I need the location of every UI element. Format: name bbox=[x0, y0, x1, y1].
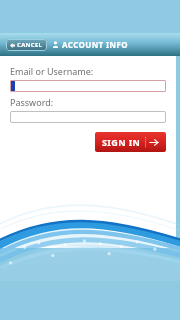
other: Sign in bbox=[150, 138, 159, 147]
staticText: CANCEL bbox=[17, 41, 43, 49]
staticText: Email or Username: bbox=[10, 65, 94, 77]
staticText: SIGN IN bbox=[102, 136, 141, 148]
button[interactable] bbox=[10, 80, 166, 92]
button[interactable]: CANCEL bbox=[6, 39, 47, 51]
staticText: Password: bbox=[10, 96, 54, 108]
button[interactable] bbox=[10, 111, 166, 123]
button[interactable]: SIGN IN bbox=[95, 132, 166, 152]
staticText: ACCOUNT INFO bbox=[62, 39, 129, 50]
